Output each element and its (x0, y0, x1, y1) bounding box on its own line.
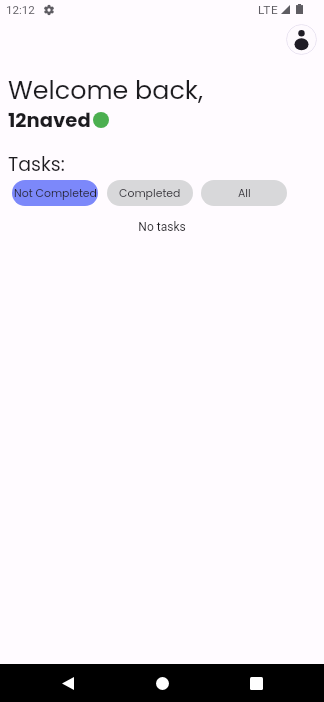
staticText: 12naved (8, 106, 91, 133)
staticText: 12:12 (6, 3, 35, 17)
staticText: Not Completed (14, 186, 97, 201)
button[interactable]: Completed (107, 180, 193, 206)
staticText: No tasks (0, 220, 324, 234)
staticText: All (238, 186, 251, 201)
button[interactable]: Home (150, 671, 174, 695)
button[interactable]: Back (56, 671, 80, 695)
staticText: Completed (119, 186, 181, 201)
button[interactable]: Not Completed (12, 180, 98, 206)
staticText: Tasks: (8, 151, 65, 178)
staticText: LTE (258, 3, 279, 17)
button[interactable]: Profile (286, 24, 317, 55)
button[interactable]: Recents (244, 671, 268, 695)
staticText: Welcome back, (8, 72, 203, 108)
button[interactable]: All (201, 180, 287, 206)
